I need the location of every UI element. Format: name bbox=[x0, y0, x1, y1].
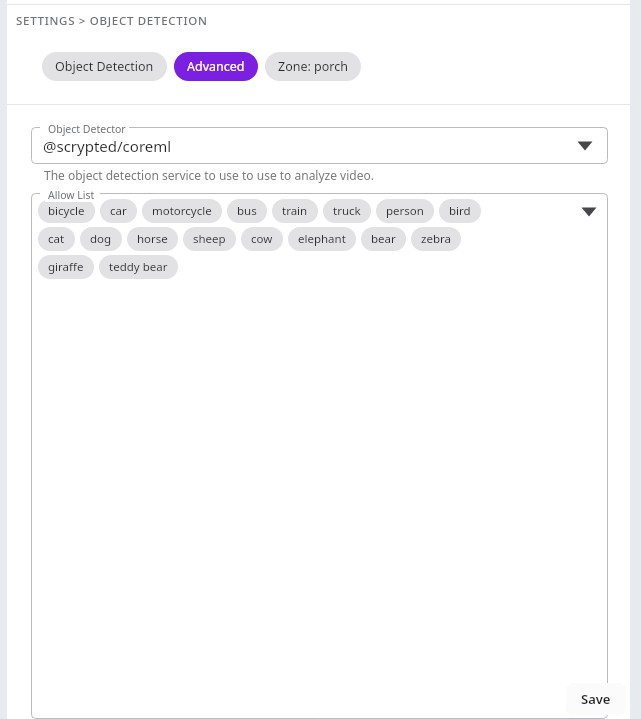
staticText: truck bbox=[333, 203, 361, 219]
staticText: elephant bbox=[298, 231, 346, 247]
button[interactable]: dog bbox=[80, 227, 122, 251]
button[interactable]: Open Allow List dropdown bbox=[576, 199, 602, 225]
staticText: teddy bear bbox=[109, 259, 168, 275]
staticText: @scrypted/coreml bbox=[43, 136, 572, 156]
button[interactable]: giraffe bbox=[38, 255, 94, 279]
button[interactable]: car bbox=[100, 199, 137, 223]
staticText: motorcycle bbox=[152, 203, 212, 219]
staticText: bus bbox=[237, 203, 257, 219]
button[interactable]: bus bbox=[227, 199, 267, 223]
button[interactable]: person bbox=[376, 199, 434, 223]
staticText: Save bbox=[581, 690, 611, 708]
staticText: Allow List bbox=[48, 188, 95, 202]
staticText: Advanced bbox=[187, 58, 245, 75]
staticText: dog bbox=[90, 231, 112, 247]
button[interactable]: Zone: porch bbox=[265, 52, 361, 81]
staticText: bird bbox=[449, 203, 471, 219]
staticText: horse bbox=[137, 231, 168, 247]
button[interactable]: truck bbox=[323, 199, 371, 223]
button[interactable]: sheep bbox=[183, 227, 236, 251]
button[interactable]: bear bbox=[361, 227, 406, 251]
button[interactable]: teddy bear bbox=[99, 255, 178, 279]
staticText: person bbox=[386, 203, 424, 219]
staticText: cat bbox=[48, 231, 65, 247]
staticText: bicycle bbox=[48, 203, 85, 219]
staticText: Object Detection bbox=[55, 58, 154, 75]
staticText: car bbox=[110, 203, 127, 219]
button[interactable]: horse bbox=[127, 227, 178, 251]
button[interactable]: elephant bbox=[288, 227, 356, 251]
button[interactable]: Advanced bbox=[174, 52, 258, 81]
staticText: giraffe bbox=[48, 259, 84, 275]
staticText: bear bbox=[371, 231, 396, 247]
button[interactable]: cow bbox=[241, 227, 283, 251]
button[interactable]: train bbox=[272, 199, 318, 223]
staticText: The object detection service to use to u… bbox=[44, 167, 374, 183]
staticText: sheep bbox=[193, 231, 226, 247]
staticText: Zone: porch bbox=[278, 58, 348, 75]
button[interactable]: motorcycle bbox=[142, 199, 222, 223]
button[interactable]: bicycle bbox=[38, 199, 95, 223]
button[interactable]: cat bbox=[38, 227, 75, 251]
staticText: SETTINGS > OBJECT DETECTION bbox=[16, 13, 208, 29]
staticText: Object Detector bbox=[48, 122, 126, 136]
button[interactable]: zebra bbox=[411, 227, 461, 251]
button[interactable]: bird bbox=[439, 199, 481, 223]
button[interactable]: Open Object Detector dropdown bbox=[572, 133, 598, 159]
staticText: zebra bbox=[421, 231, 451, 247]
staticText: train bbox=[282, 203, 308, 219]
staticText: cow bbox=[251, 231, 273, 247]
button[interactable]: Object Detection bbox=[42, 52, 167, 81]
button[interactable]: Save bbox=[566, 683, 626, 715]
